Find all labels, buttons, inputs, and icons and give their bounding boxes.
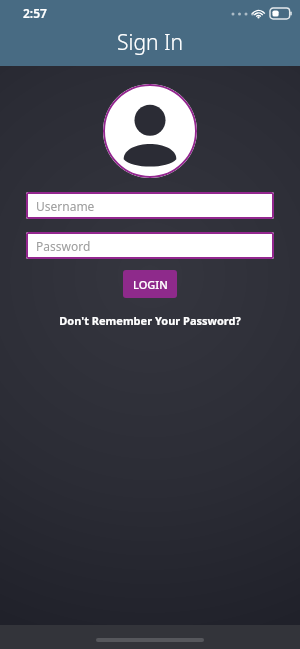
button[interactable]: Password — [26, 232, 274, 259]
staticText: 2:57 — [23, 5, 47, 21]
button[interactable]: LOGIN — [123, 270, 177, 298]
staticText: Password — [36, 238, 91, 254]
staticText: Don't Remember Your Password? — [59, 313, 241, 328]
button[interactable]: Username — [26, 192, 274, 219]
staticText: Username — [36, 198, 95, 214]
button[interactable]: Profile picture — [103, 84, 197, 178]
button[interactable]: Don't Remember Your Password? — [53, 310, 247, 331]
staticText: Sign In — [117, 28, 183, 57]
staticText: LOGIN — [133, 277, 168, 292]
